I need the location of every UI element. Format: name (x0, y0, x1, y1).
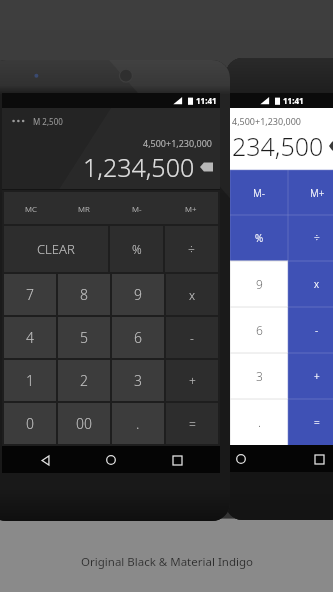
button[interactable]: 2 (58, 360, 110, 401)
staticText: = (189, 416, 196, 432)
button[interactable]: M- (230, 170, 288, 215)
staticText: + (189, 373, 196, 389)
staticText: 1,234,500 (83, 150, 195, 184)
button[interactable]: + (288, 353, 333, 399)
staticText: 3 (134, 371, 142, 390)
staticText: 2 (80, 371, 88, 390)
button[interactable]: 0 (4, 403, 56, 444)
button[interactable]: ÷ (165, 226, 218, 272)
button[interactable]: M+ (288, 170, 333, 215)
button[interactable]: 3 (230, 353, 288, 399)
staticText: x (314, 277, 320, 291)
staticText: 4,500+1,230,000 (232, 115, 302, 127)
button[interactable]: M- (110, 192, 164, 224)
staticText: x (189, 287, 196, 303)
button[interactable]: ÷ (288, 215, 333, 261)
staticText: M+ (310, 186, 325, 200)
staticText: M 2,500 (33, 116, 63, 127)
staticText: 0 (26, 414, 34, 433)
button[interactable]: 5 (58, 317, 110, 358)
button[interactable]: % (110, 226, 163, 272)
staticText: CLEAR (37, 240, 75, 258)
staticText: 6 (256, 322, 263, 338)
button[interactable]: + (166, 360, 218, 401)
staticText: 1 (26, 371, 34, 390)
staticText: - (190, 330, 194, 346)
staticText: 11:41 (196, 95, 217, 106)
staticText: 3 (256, 368, 263, 384)
button[interactable]: 6 (112, 317, 164, 358)
button[interactable]: MR (57, 192, 110, 224)
staticText: 9 (134, 285, 142, 304)
button[interactable]: . (230, 399, 288, 445)
staticText: + (314, 369, 320, 383)
button[interactable]: M+ (164, 192, 218, 224)
staticText: % (255, 231, 264, 245)
staticText: Original Black & Material Indigo (81, 554, 253, 570)
staticText: 00 (76, 414, 92, 433)
staticText: 11:41 (283, 95, 304, 106)
staticText: MR (78, 203, 90, 214)
staticText: 4,500+1,230,000 (143, 137, 213, 149)
button[interactable]: 4 (4, 317, 56, 358)
button[interactable]: 1 (4, 360, 56, 401)
staticText: M- (253, 186, 265, 200)
staticText: - (315, 323, 319, 337)
button[interactable]: - (166, 317, 218, 358)
button[interactable]: x (288, 261, 333, 307)
button[interactable]: Recents (310, 450, 328, 468)
button[interactable]: = (288, 399, 333, 445)
staticText: 6 (134, 328, 142, 347)
button[interactable]: Home (232, 450, 250, 468)
staticText: M- (132, 203, 142, 214)
button[interactable]: 9 (230, 261, 288, 307)
staticText: = (314, 415, 320, 429)
button[interactable]: Home (102, 451, 120, 469)
staticText: % (132, 241, 142, 257)
staticText: 234,500 (232, 129, 324, 163)
button[interactable]: - (288, 307, 333, 353)
staticText: MC (25, 203, 37, 214)
button[interactable]: CLEAR (4, 226, 108, 272)
button[interactable]: Backspace (329, 141, 333, 151)
button[interactable]: Recents (168, 451, 186, 469)
button[interactable]: 6 (230, 307, 288, 353)
button[interactable]: x (166, 274, 218, 315)
button[interactable]: 00 (58, 403, 110, 444)
button[interactable]: Backspace (200, 162, 213, 172)
button[interactable]: MC (4, 192, 57, 224)
staticText: . (258, 414, 261, 430)
staticText: 5 (80, 328, 88, 347)
button[interactable]: 8 (58, 274, 110, 315)
staticText: 8 (80, 285, 88, 304)
button[interactable]: 7 (4, 274, 56, 315)
staticText: 9 (256, 276, 263, 292)
button[interactable]: More options (11, 115, 27, 127)
staticText: ÷ (188, 241, 195, 257)
staticText: 7 (26, 285, 34, 304)
staticText: ÷ (314, 231, 320, 245)
button[interactable]: = (166, 403, 218, 444)
button[interactable]: Back (36, 451, 54, 469)
staticText: M+ (185, 203, 197, 214)
button[interactable]: 9 (112, 274, 164, 315)
staticText: . (136, 414, 140, 433)
button[interactable]: % (230, 215, 288, 261)
button[interactable]: 3 (112, 360, 164, 401)
staticText: 4 (26, 328, 34, 347)
